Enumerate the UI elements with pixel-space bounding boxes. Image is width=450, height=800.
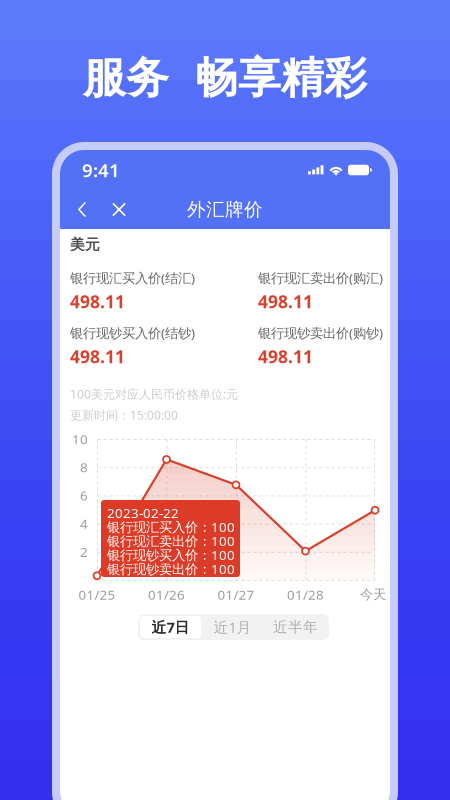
staticText: 498.11 — [258, 290, 313, 313]
staticText: 银行现钞买入价(结钞) — [70, 324, 195, 342]
staticText: 01/26 — [148, 586, 185, 603]
staticText: 01/25 — [78, 586, 115, 603]
staticText: 498.11 — [70, 345, 125, 368]
staticText: 6 — [80, 486, 88, 504]
staticText: 498.11 — [258, 345, 313, 368]
staticText: 银行现汇买入价(结汇) — [70, 269, 195, 287]
staticText: 498.11 — [70, 290, 125, 313]
staticText: 银行现钞买入价：100 — [107, 546, 235, 564]
staticText: 4 — [80, 515, 88, 532]
button[interactable]: 近1月 — [201, 616, 264, 638]
staticText: 银行现汇卖出价(购汇) — [258, 269, 383, 287]
button[interactable]: 近7日 — [140, 616, 201, 638]
staticText: 8 — [80, 458, 88, 476]
button[interactable]: 关闭 — [105, 191, 133, 227]
staticText: 银行现汇卖出价：100 — [107, 532, 235, 550]
button[interactable]: 返回 — [67, 191, 97, 227]
staticText: 100美元对应人民币价格单位:元 — [70, 386, 238, 402]
staticText: 银行现汇买入价：100 — [107, 518, 235, 536]
staticText: 10 — [72, 430, 88, 448]
staticText: 服务 畅享精彩 — [83, 52, 367, 104]
staticText: 更新时间：15:00:00 — [70, 407, 178, 423]
staticText: 美元 — [70, 235, 100, 253]
staticText: 01/27 — [217, 586, 254, 603]
staticText: 2023-02-22 — [107, 504, 179, 522]
staticText: 近1月 — [213, 617, 251, 637]
staticText: 银行现钞卖出价：100 — [107, 560, 235, 578]
staticText: 今天 — [360, 586, 386, 603]
button[interactable]: 近半年 — [264, 616, 327, 638]
staticText: 2 — [80, 543, 88, 561]
staticText: 外汇牌价 — [187, 198, 263, 221]
staticText: 银行现钞卖出价(购钞) — [258, 324, 383, 342]
staticText: 9:41 — [82, 158, 120, 182]
staticText: 01/28 — [287, 586, 324, 603]
staticText: 近半年 — [273, 618, 318, 636]
staticText: 近7日 — [151, 617, 189, 637]
